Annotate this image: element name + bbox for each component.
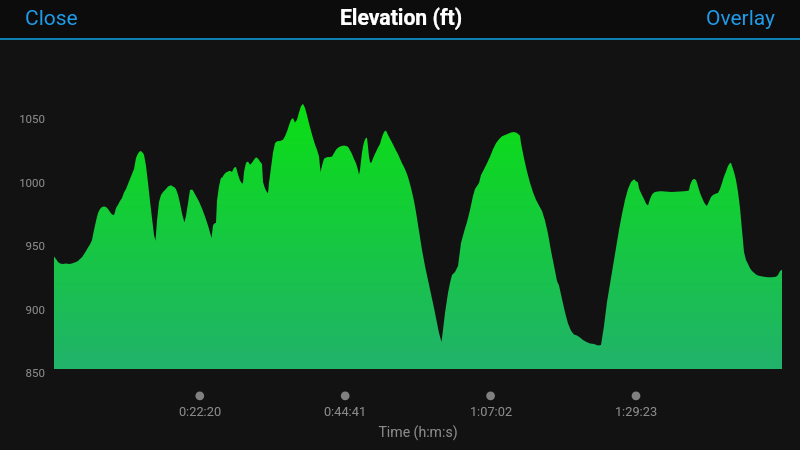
staticText: 1000: [0, 176, 45, 189]
staticText: Time (h:m:s): [368, 424, 468, 441]
staticText: Overlay: [706, 6, 776, 31]
staticText: 850: [0, 366, 45, 379]
staticText: 900: [0, 303, 45, 316]
staticText: 950: [0, 239, 45, 252]
staticText: Elevation (ft): [321, 5, 481, 30]
button[interactable]: Overlay: [692, 1, 794, 38]
button[interactable]: Close: [6, 1, 96, 38]
staticText: 0:44:41: [295, 404, 395, 419]
staticText: 1050: [0, 112, 45, 125]
staticText: 1:29:23: [586, 404, 686, 419]
staticText: 0:22:20: [150, 404, 250, 419]
staticText: 1:07:02: [441, 404, 541, 419]
staticText: Close: [25, 6, 78, 31]
